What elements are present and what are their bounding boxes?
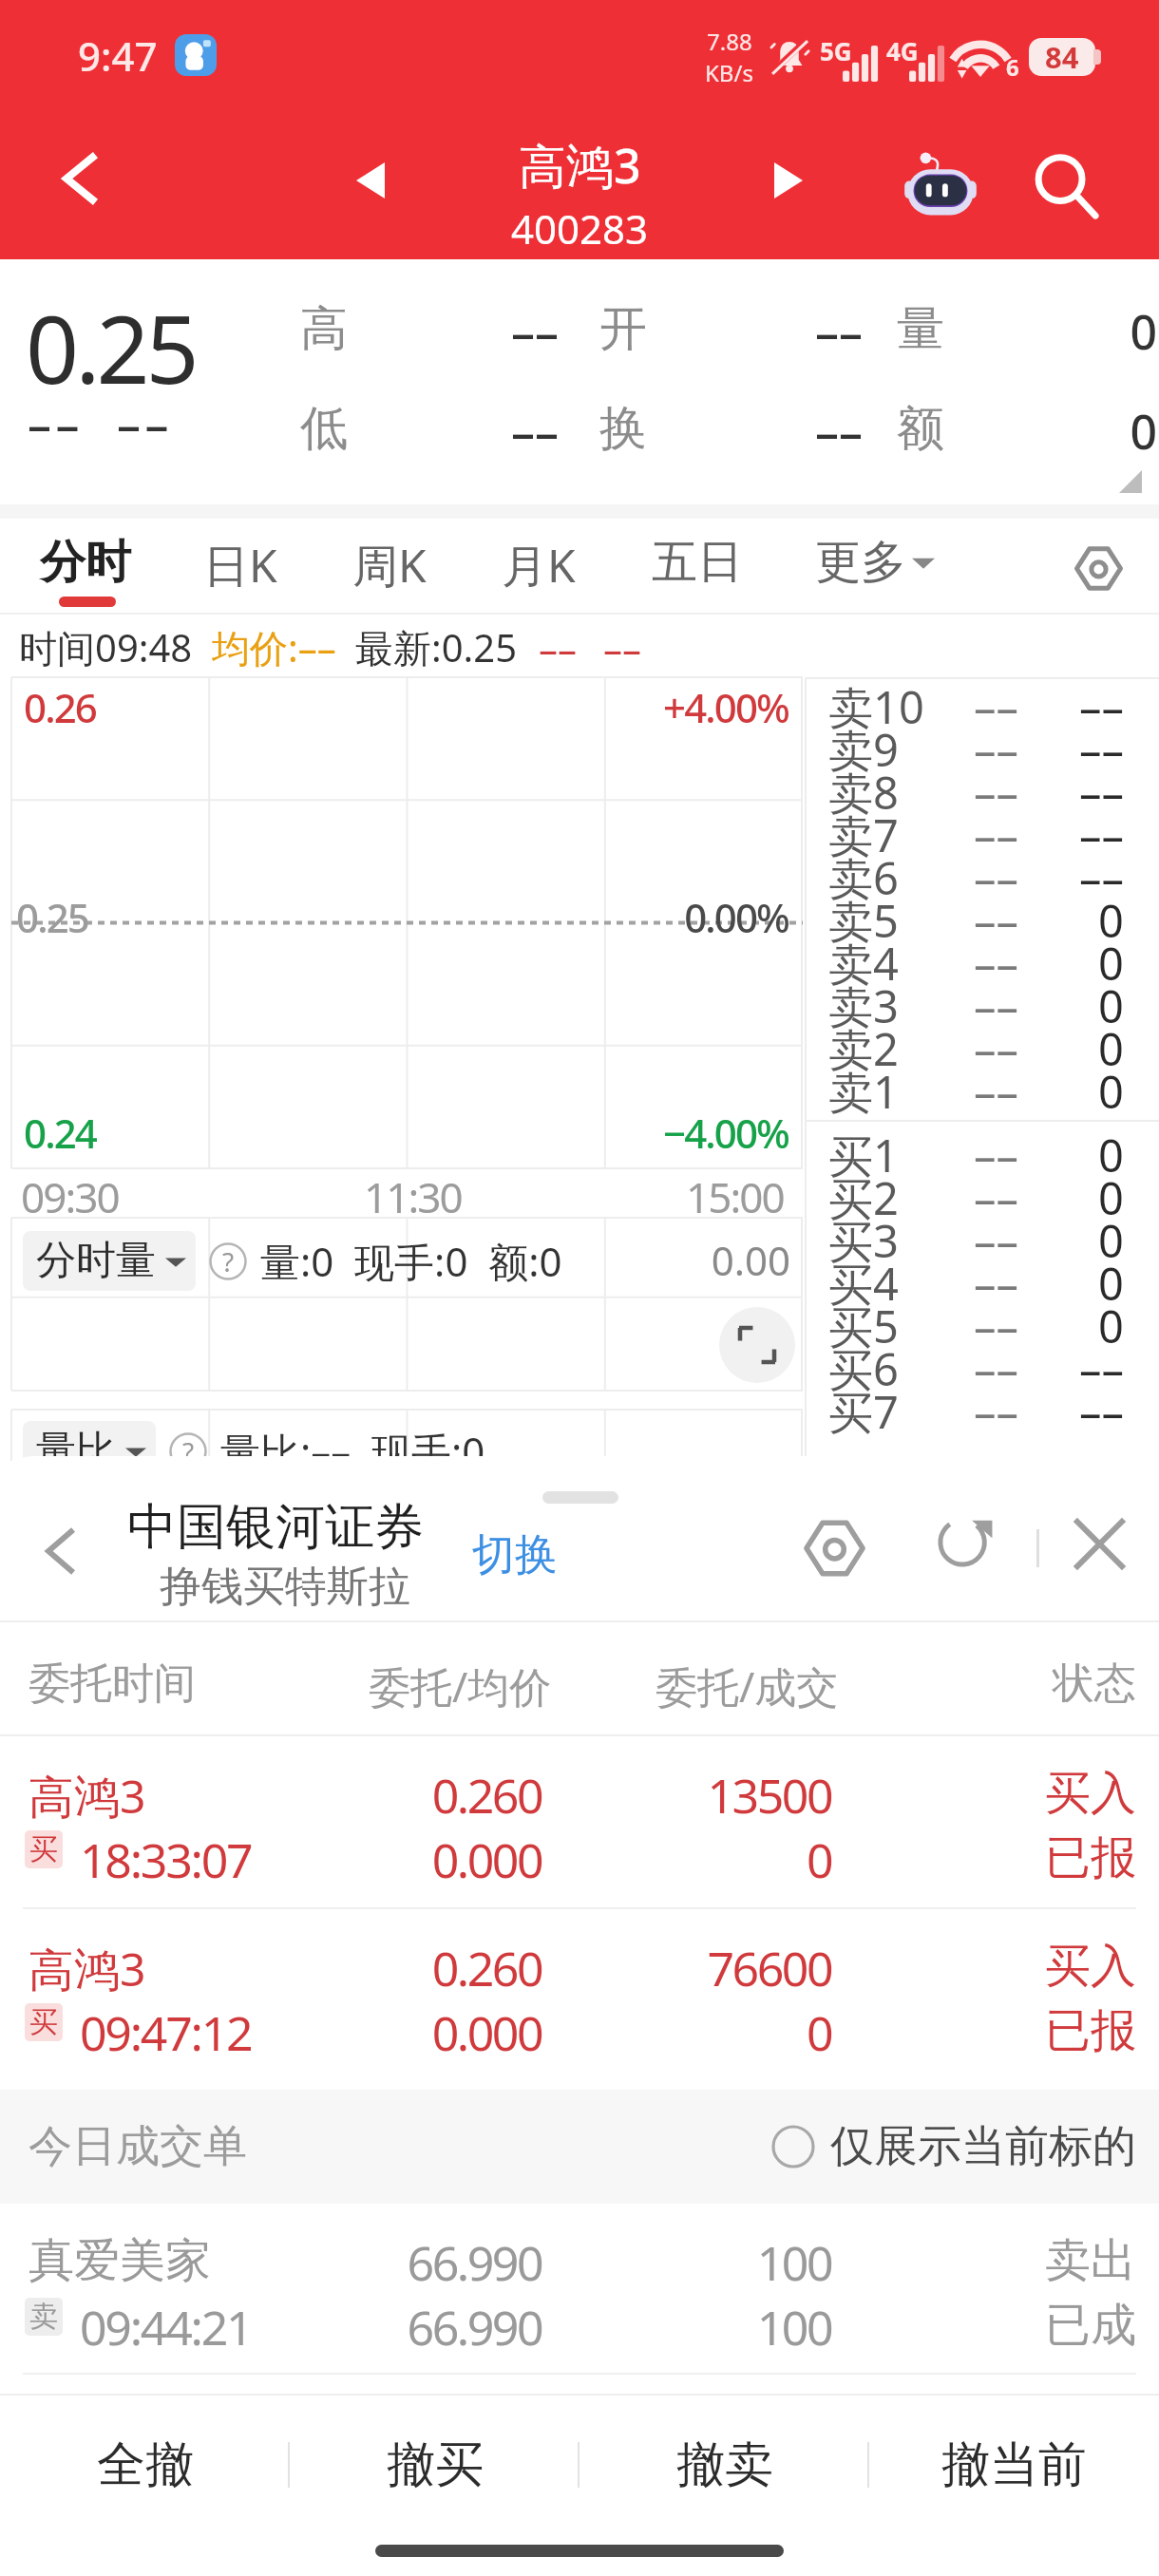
button[interactable]: 切换: [472, 1528, 558, 1582]
staticText: 卖3: [828, 975, 899, 1036]
button[interactable]: 买5: [805, 1304, 1159, 1347]
button[interactable]: 五日: [652, 519, 743, 576]
staticText: 已成: [855, 2297, 1136, 2354]
staticText: 6: [1006, 51, 1019, 83]
staticText: 最新:0.25: [355, 621, 518, 673]
button[interactable]: Chart settings: [1060, 530, 1136, 606]
staticText: ?: [182, 1433, 195, 1469]
button[interactable]: 买3: [805, 1219, 1159, 1261]
button[interactable]: 撤买: [290, 2405, 579, 2525]
staticText: ––: [828, 676, 1018, 737]
button[interactable]: 撤卖: [579, 2405, 869, 2525]
staticText: 今日成交单: [28, 2119, 247, 2174]
button[interactable]: AI assistant: [901, 144, 980, 224]
button[interactable]: 卖2: [805, 1027, 1159, 1070]
staticText: ––: [828, 1125, 1018, 1185]
button[interactable]: Back: [28, 131, 133, 226]
staticText: ––: [366, 299, 559, 364]
staticText: 委托/均价: [369, 1657, 552, 1714]
button[interactable]: 全撤: [0, 2405, 290, 2525]
button[interactable]: Search: [1024, 144, 1108, 228]
staticText: 买6: [828, 1338, 899, 1399]
staticText: 9:47: [78, 28, 158, 83]
button[interactable]: 仅展示当前标的: [771, 2119, 1136, 2174]
staticText: 11:30: [364, 1168, 462, 1225]
staticText: ––: [805, 1338, 1124, 1399]
staticText: ––: [828, 719, 1018, 780]
button[interactable]: Next stock: [750, 142, 826, 218]
button[interactable]: Previous stock: [332, 142, 408, 218]
staticText: 0: [805, 975, 1124, 1036]
staticText: 分时量: [36, 1236, 156, 1286]
staticText: 7.88: [707, 26, 752, 57]
staticText: 卖8: [828, 762, 899, 823]
button[interactable]: 卖9: [805, 728, 1159, 770]
staticText: 撤买: [387, 2434, 484, 2495]
staticText: 0.00: [589, 1233, 790, 1287]
button[interactable]: 买4: [805, 1261, 1159, 1304]
staticText: 0: [805, 933, 1124, 994]
staticText: 0: [579, 1828, 831, 1892]
button[interactable]: 卖10: [805, 685, 1159, 728]
staticText: 400283: [511, 201, 649, 256]
staticText: 切换: [472, 1528, 558, 1582]
button[interactable]: Settings: [794, 1508, 874, 1588]
staticText: 买3: [828, 1210, 899, 1271]
button[interactable]: 更多: [815, 534, 935, 591]
staticText: 09:44:21: [80, 2295, 252, 2359]
button[interactable]: 卖6: [805, 856, 1159, 899]
button[interactable]: 买6: [805, 1347, 1159, 1390]
button[interactable]: 卖7: [805, 813, 1159, 856]
staticText: ?: [222, 1243, 235, 1279]
staticText: ––: [828, 933, 1018, 994]
staticText: 0.24: [24, 1106, 96, 1160]
staticText: 买7: [828, 1381, 899, 1442]
staticText: 状态: [855, 1657, 1136, 1710]
staticText: 66.990: [313, 2295, 541, 2359]
staticText: 全撤: [97, 2434, 194, 2495]
staticText: ––: [828, 847, 1018, 908]
button[interactable]: 周K: [352, 519, 427, 581]
staticText: −4.00%: [537, 1106, 788, 1160]
button[interactable]: 分时量: [36, 1236, 186, 1286]
button[interactable]: 卖1: [805, 1070, 1159, 1112]
staticText: 卖2: [828, 1018, 899, 1079]
button[interactable]: Refresh: [927, 1506, 1003, 1582]
staticText: 买: [29, 2004, 58, 2040]
staticText: 0: [805, 1018, 1124, 1079]
staticText: 0: [805, 1061, 1124, 1122]
button[interactable]: 高鸿3: [0, 1909, 1159, 2080]
button[interactable]: 日K: [203, 519, 277, 581]
button[interactable]: 月K: [502, 519, 576, 581]
button[interactable]: 卖3: [805, 984, 1159, 1027]
staticText: 15:00: [686, 1168, 784, 1225]
staticText: 量比:–– 现手:0: [220, 1424, 485, 1478]
button[interactable]: Close: [1061, 1506, 1137, 1582]
staticText: 买入: [855, 1765, 1136, 1822]
staticText: ––: [828, 762, 1018, 823]
button[interactable]: 买7: [805, 1390, 1159, 1432]
button[interactable]: Fullscreen chart: [719, 1307, 795, 1383]
staticText: 09:47:12: [80, 2000, 252, 2065]
button[interactable]: Back: [17, 1506, 104, 1597]
button[interactable]: 高鸿3: [0, 1736, 1159, 1907]
button[interactable]: 分时: [40, 519, 131, 576]
staticText: ––: [828, 975, 1018, 1036]
button[interactable]: 真爱美家: [0, 2204, 1159, 2375]
button[interactable]: 卖8: [805, 770, 1159, 813]
staticText: ––: [805, 719, 1124, 780]
button[interactable]: 卖5: [805, 899, 1159, 941]
staticText: ––: [805, 1381, 1124, 1442]
staticText: 100: [579, 2230, 831, 2295]
button[interactable]: 买2: [805, 1176, 1159, 1219]
button[interactable]: 买1: [805, 1133, 1159, 1176]
staticText: 周K: [352, 534, 427, 597]
staticText: 低: [300, 399, 348, 459]
staticText: 0: [805, 1210, 1124, 1271]
button[interactable]: 量比: [36, 1426, 146, 1476]
staticText: 09:30: [21, 1168, 119, 1225]
button[interactable]: 卖4: [805, 941, 1159, 984]
button[interactable]: 撤当前: [869, 2405, 1159, 2525]
staticText: 买入: [855, 1938, 1136, 1995]
staticText: 高: [300, 299, 348, 359]
